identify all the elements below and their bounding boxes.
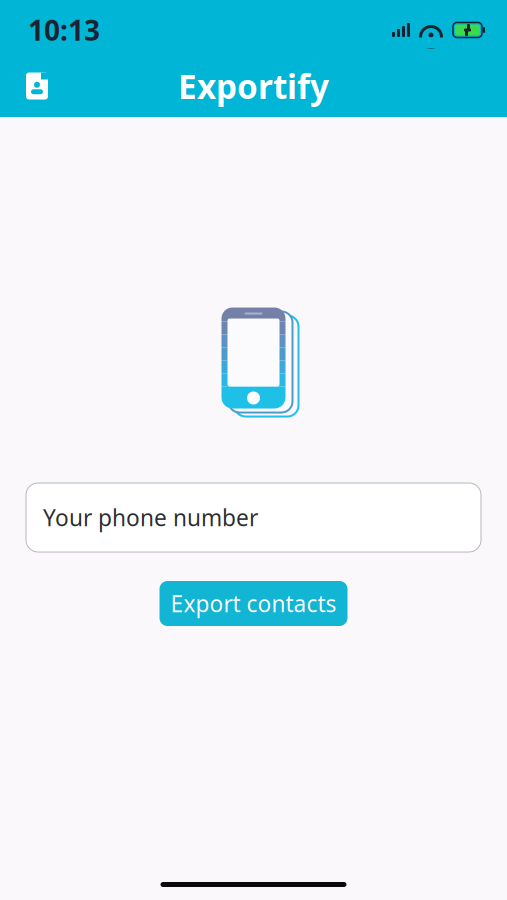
- staticText: Export contacts: [170, 588, 336, 618]
- staticText: 10:13: [28, 11, 100, 49]
- button[interactable]: Contacts file: [15, 64, 59, 108]
- staticText: Your phone number: [43, 502, 258, 532]
- button[interactable]: Your phone number: [26, 483, 481, 552]
- staticText: Exportify: [178, 64, 329, 108]
- button[interactable]: Export contacts: [159, 581, 347, 626]
